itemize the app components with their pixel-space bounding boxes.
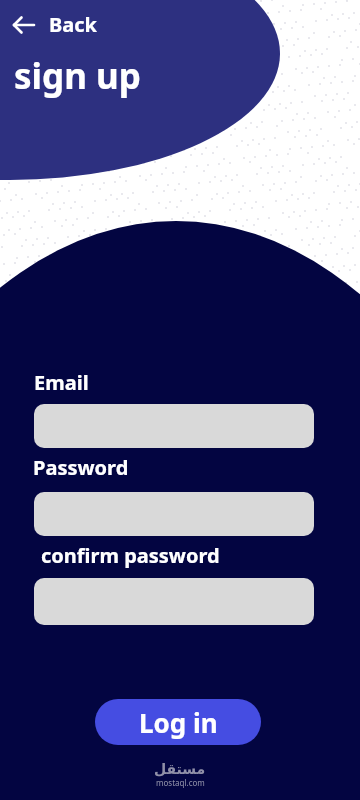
button[interactable]: Log in [95, 699, 261, 745]
staticText: mostaql.com [156, 777, 205, 788]
staticText: sign up [14, 52, 141, 100]
staticText: Back [49, 11, 97, 38]
button[interactable] [34, 492, 314, 536]
staticText: مستقل [154, 761, 206, 777]
button[interactable]: Back [7, 7, 101, 42]
button[interactable] [34, 578, 314, 625]
staticText: Password [33, 454, 129, 481]
button[interactable] [34, 404, 314, 448]
staticText: Email [34, 369, 89, 396]
staticText: confirm password [41, 542, 220, 569]
staticText: Log in [139, 705, 218, 740]
